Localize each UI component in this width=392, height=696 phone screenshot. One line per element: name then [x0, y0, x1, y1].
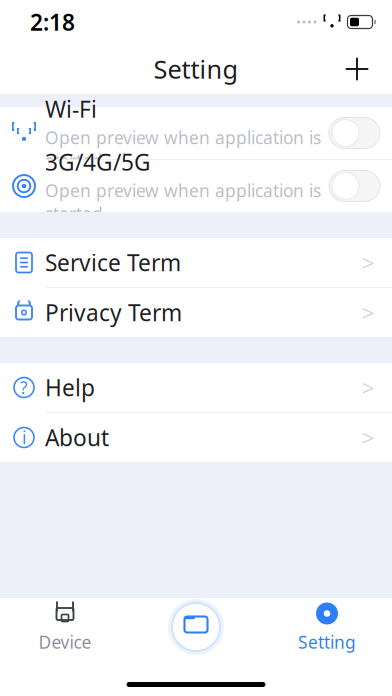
button[interactable]: 3G/4G/5G	[0, 160, 392, 212]
staticText: i	[22, 426, 26, 449]
staticText: Open preview when application is started…	[45, 179, 321, 225]
button[interactable]: Wi-Fi	[0, 107, 392, 159]
staticText: Privacy Term	[45, 297, 182, 327]
staticText: >	[361, 422, 374, 452]
staticText: 2:18	[30, 7, 75, 37]
button[interactable]: Device	[0, 598, 130, 656]
staticText: Help	[45, 372, 95, 402]
button[interactable]: Setting	[262, 598, 392, 656]
staticText: About	[45, 422, 109, 452]
staticText: Open preview when application is started…	[45, 126, 321, 172]
staticText: Service Term	[45, 247, 181, 277]
button[interactable]: Privacy Term	[0, 288, 392, 337]
button[interactable]: Add	[340, 52, 392, 86]
staticText: ?	[20, 376, 28, 399]
staticText: >	[361, 247, 374, 277]
staticText: >	[361, 297, 374, 327]
staticText: Setting	[153, 52, 238, 86]
staticText: Setting	[298, 630, 356, 653]
staticText: Wi-Fi	[45, 94, 97, 124]
button[interactable]: Service Term	[0, 238, 392, 287]
button[interactable]: ?	[0, 363, 392, 412]
button[interactable]: i	[0, 413, 392, 462]
button[interactable]: Files	[130, 598, 262, 656]
staticText: 3G/4G/5G	[45, 147, 151, 177]
staticText: >	[361, 372, 374, 402]
staticText: Device	[38, 630, 91, 653]
